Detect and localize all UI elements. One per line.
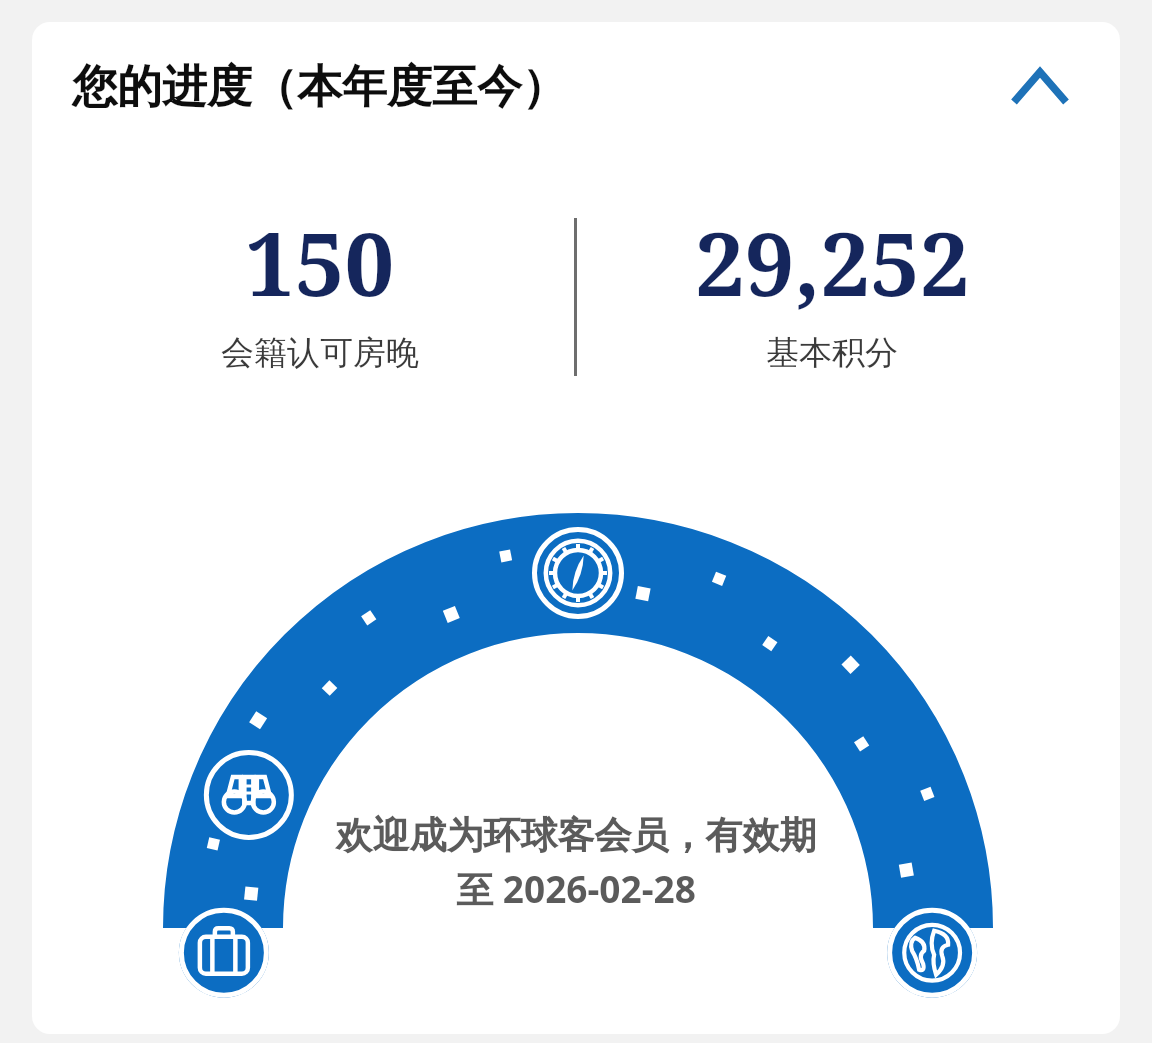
button[interactable]: Collapse section xyxy=(990,37,1090,137)
button[interactable]: 29,252 xyxy=(576,202,1088,374)
staticText: 欢迎成为环球客会员，有效期 至 2026-02-28 xyxy=(282,812,870,914)
staticText: 会籍认可房晚 xyxy=(221,332,419,374)
button[interactable]: 您的进度（本年度至今） xyxy=(32,22,1120,152)
staticText: 基本积分 xyxy=(766,332,898,374)
staticText: 您的进度（本年度至今） xyxy=(72,59,567,116)
staticText: 150 xyxy=(245,202,395,322)
staticText: 29,252 xyxy=(695,202,970,322)
button[interactable]: 150 xyxy=(64,202,576,374)
